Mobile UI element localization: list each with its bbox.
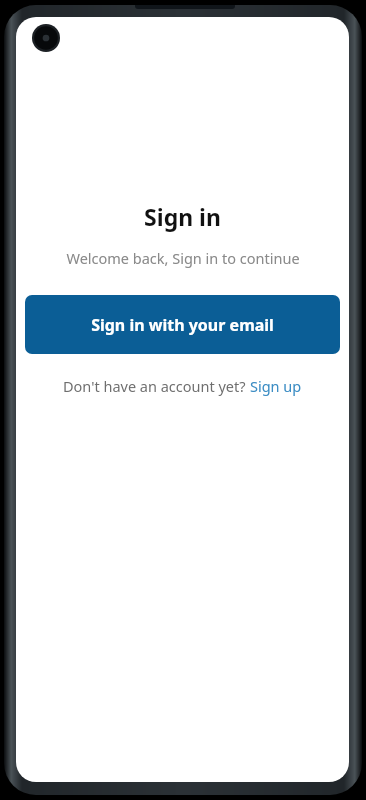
staticText: Sign in with your email	[91, 314, 274, 336]
staticText: Welcome back, Sign in to continue	[66, 248, 300, 268]
button[interactable]: Sign in with your email	[25, 295, 340, 354]
staticText: Sign in	[144, 201, 221, 232]
button[interactable]: Sign up	[250, 376, 302, 396]
staticText: Sign up	[250, 376, 302, 396]
staticText: Don't have an account yet?	[63, 376, 250, 396]
